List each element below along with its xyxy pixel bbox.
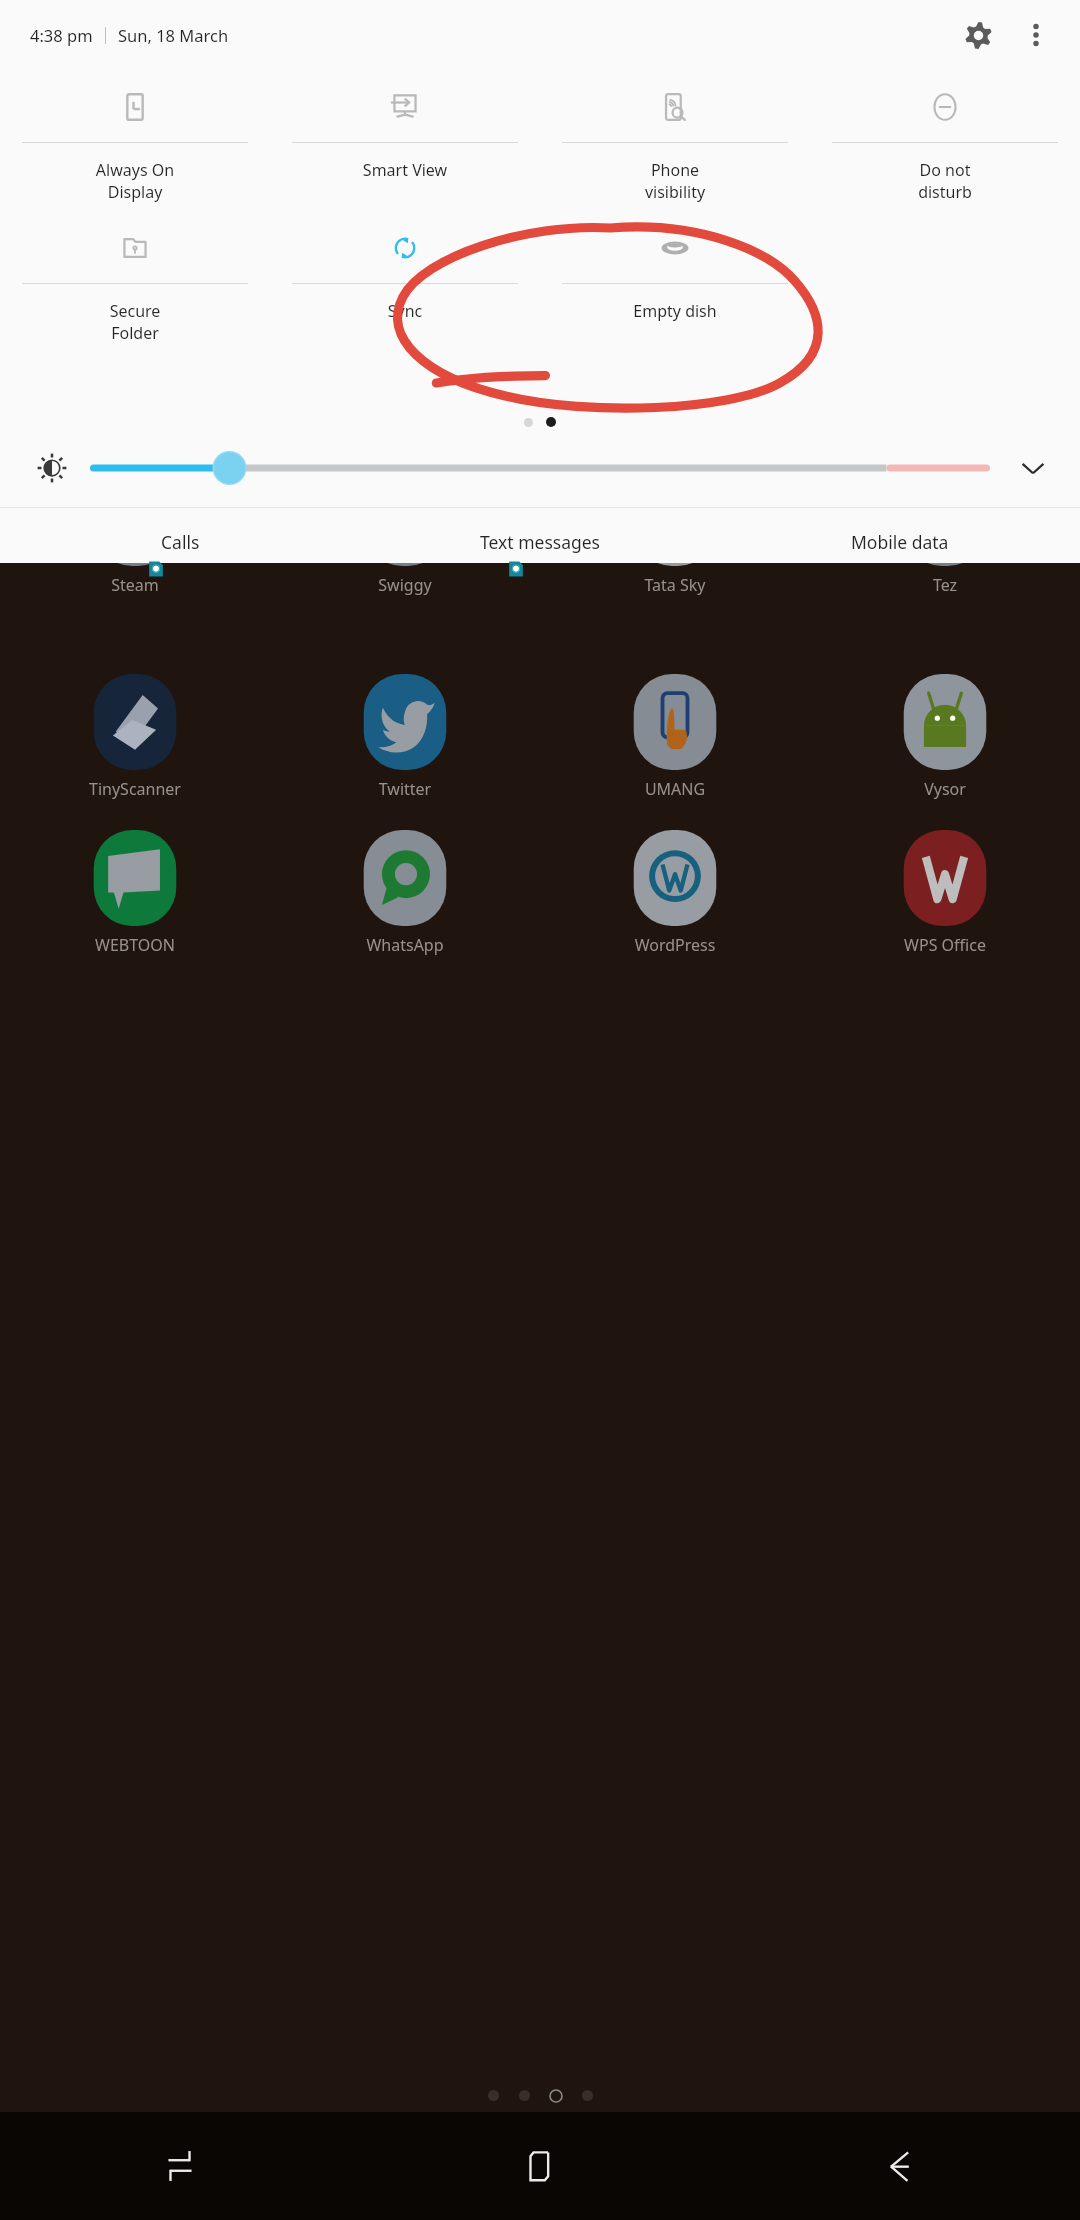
button[interactable]: WPS Office	[810, 830, 1080, 956]
button[interactable]: Recents	[0, 2112, 360, 2220]
staticText: WPS Office	[810, 934, 1080, 956]
button[interactable]: WhatsApp	[270, 830, 540, 956]
staticText: WEBTOON	[0, 934, 270, 956]
button[interactable]: Sync	[270, 217, 540, 322]
staticText: Steam	[0, 574, 270, 596]
staticText: Smart View	[270, 159, 540, 181]
staticText: Twitter	[270, 778, 540, 800]
staticText: 4:38 pm	[30, 24, 93, 46]
staticText: Swiggy	[270, 574, 540, 596]
staticText: Tata Sky	[540, 574, 810, 596]
button[interactable]: Tata Sky	[540, 518, 810, 644]
button[interactable]: Settings	[954, 11, 1002, 59]
staticText: Empty dish	[540, 300, 810, 322]
button[interactable]: Back	[720, 2112, 1080, 2220]
button[interactable]: Calls	[0, 508, 360, 563]
button[interactable]: More options	[1014, 13, 1058, 57]
button[interactable]: WEBTOON	[0, 830, 270, 956]
staticText: Secure Folder	[0, 300, 270, 344]
staticText: Sun, 18 March	[118, 24, 229, 46]
staticText: Always On Display	[0, 159, 270, 203]
staticText: Mobile data	[851, 530, 949, 554]
staticText: Sync	[270, 300, 540, 322]
button[interactable]: Home	[360, 2112, 720, 2220]
button[interactable]: Do not disturb	[810, 76, 1080, 203]
staticText: TinyScanner	[0, 778, 270, 800]
staticText: Tez	[810, 574, 1080, 596]
staticText: Vysor	[810, 778, 1080, 800]
staticText: Calls	[161, 530, 200, 554]
button[interactable]: TinyScanner	[0, 674, 270, 800]
button[interactable]: Text messages	[360, 508, 720, 563]
staticText: Text messages	[480, 530, 600, 554]
button[interactable]: Vysor	[810, 674, 1080, 800]
button[interactable]: UMANG	[540, 674, 810, 800]
button[interactable]: Steam	[0, 518, 270, 644]
staticText: Do not disturb	[810, 159, 1080, 203]
button[interactable]: Empty dish	[540, 217, 810, 322]
button[interactable]	[90, 448, 990, 488]
button[interactable]: Secure Folder	[0, 217, 270, 344]
button[interactable]: Expand	[1010, 445, 1056, 491]
button[interactable]: Tez	[810, 518, 1080, 644]
staticText: UMANG	[540, 778, 810, 800]
button[interactable]: Always On Display	[0, 76, 270, 203]
staticText: Phone visibility	[540, 159, 810, 203]
button[interactable]: Brightness	[34, 450, 70, 486]
staticText: WhatsApp	[270, 934, 540, 956]
button[interactable]: Swiggy	[270, 518, 540, 644]
button[interactable]: WordPress	[540, 830, 810, 956]
button[interactable]: Twitter	[270, 674, 540, 800]
button[interactable]: Mobile data	[720, 508, 1080, 563]
button[interactable]: Smart View	[270, 76, 540, 181]
staticText: WordPress	[540, 934, 810, 956]
button[interactable]: Phone visibility	[540, 76, 810, 203]
